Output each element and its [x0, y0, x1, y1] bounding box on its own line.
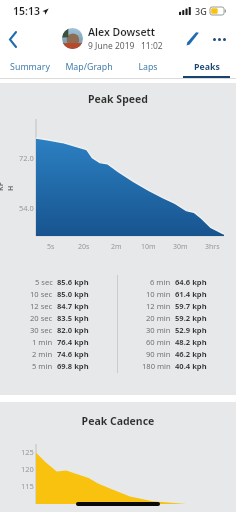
staticText: 1 min [32, 337, 53, 347]
staticText: 11:02 [141, 40, 163, 52]
staticText: 83.5 kph [57, 313, 89, 323]
staticText: 85.0 kph [57, 289, 89, 299]
staticText: 30m [173, 242, 188, 252]
staticText: 74.6 kph [57, 349, 89, 359]
staticText: 69.8 kph [57, 361, 89, 371]
staticText: 64.6 kph [175, 277, 207, 287]
button[interactable]: Back [0, 26, 26, 52]
button[interactable] [62, 28, 83, 49]
staticText: 120 [21, 464, 34, 474]
button[interactable]: Summary [0, 55, 59, 78]
staticText: 82.0 kph [57, 325, 89, 335]
staticText: 6 min [150, 277, 171, 287]
staticText: 15:13 [13, 4, 40, 18]
staticText: 60 min [146, 337, 171, 347]
staticText: 20 sec [30, 313, 53, 323]
button[interactable]: More options [206, 26, 232, 52]
staticText: 85.6 kph [57, 277, 89, 287]
staticText: 30 sec [30, 325, 53, 335]
staticText: 30 min [146, 325, 171, 335]
staticText: 90 min [146, 349, 171, 359]
staticText: 10 min [146, 289, 171, 299]
staticText: 59.2 kph [175, 313, 207, 323]
staticText: 48.2 kph [175, 337, 207, 347]
staticText: 46.2 kph [175, 349, 207, 359]
staticText: 61.4 kph [175, 289, 207, 299]
staticText: 3hrs [205, 242, 220, 252]
staticText: 2 min [32, 349, 53, 359]
button[interactable]: Laps [118, 55, 177, 78]
staticText: 76.4 kph [57, 337, 89, 347]
staticText: 12 sec [30, 301, 53, 311]
button[interactable]: Map/Graph [59, 55, 118, 78]
staticText: 180 min [142, 361, 171, 371]
staticText: 3G [195, 5, 207, 17]
staticText: Map/Graph [65, 61, 113, 73]
staticText: 2m [111, 242, 122, 252]
staticText: 5 min [32, 361, 53, 371]
staticText: Alex Dowsett [88, 25, 156, 39]
staticText: Peak Cadence [0, 414, 236, 428]
staticText: KPH [0, 179, 16, 191]
staticText: 40.4 kph [175, 361, 207, 371]
staticText: 5s [47, 242, 55, 252]
staticText: 9 June 2019 [88, 40, 135, 52]
staticText: 59.7 kph [175, 301, 207, 311]
staticText: 20 min [146, 313, 171, 323]
button[interactable]: Edit [180, 26, 206, 52]
staticText: 10 sec [30, 289, 53, 299]
staticText: 72.0 [19, 153, 34, 163]
staticText: 20s [78, 242, 90, 252]
staticText: Laps [138, 61, 158, 73]
staticText: 54.0 [19, 203, 34, 213]
staticText: 10m [141, 242, 156, 252]
staticText: 52.9 kph [175, 325, 207, 335]
staticText: 12 min [146, 301, 171, 311]
staticText: 125 [21, 447, 34, 457]
staticText: 5 sec [35, 277, 53, 287]
staticText: 115 [21, 481, 34, 491]
staticText: Peaks [194, 61, 220, 73]
button[interactable]: Peaks [177, 55, 236, 78]
staticText: 84.7 kph [57, 301, 89, 311]
staticText: Peak Speed [0, 92, 236, 106]
staticText: Summary [10, 61, 50, 73]
